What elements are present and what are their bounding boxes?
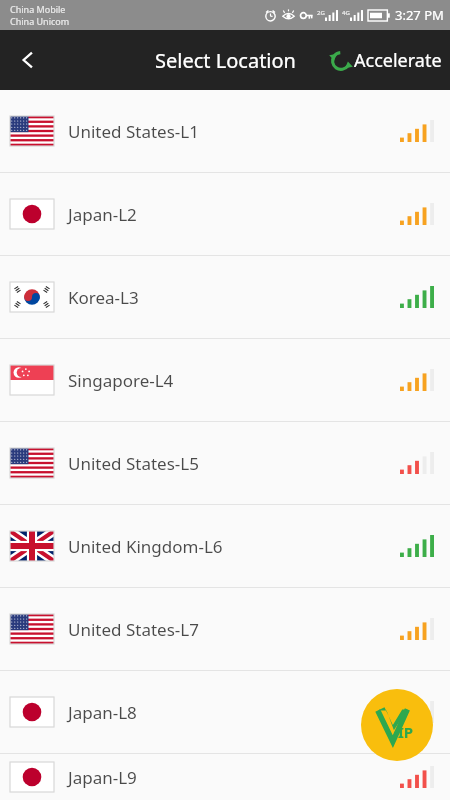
button[interactable]: Accelerate: [325, 42, 446, 79]
staticText: Select Location: [155, 47, 296, 74]
button[interactable]: VIP: [361, 689, 433, 761]
staticText: 3:27 PM: [395, 6, 444, 24]
button[interactable]: United States-L5: [0, 422, 450, 504]
staticText: 4G: [342, 9, 350, 17]
staticText: Singapore-L4: [68, 369, 174, 392]
staticText: China Mobile: [10, 3, 66, 15]
button[interactable]: United States-L7: [0, 588, 450, 670]
staticText: Japan-L2: [68, 203, 137, 226]
staticText: Accelerate: [354, 48, 442, 73]
button[interactable]: United States-L1: [0, 90, 450, 172]
button[interactable]: Korea-L3: [0, 256, 450, 338]
staticText: 2G: [317, 9, 325, 17]
button[interactable]: Japan-L9: [0, 754, 450, 800]
button[interactable]: Japan-L2: [0, 173, 450, 255]
staticText: IP: [398, 722, 414, 742]
staticText: United States-L5: [68, 452, 199, 475]
staticText: United Kingdom-L6: [68, 535, 223, 558]
staticText: China Unicom: [10, 15, 70, 27]
button[interactable]: Back: [0, 32, 56, 88]
button[interactable]: Singapore-L4: [0, 339, 450, 421]
staticText: Japan-L9: [68, 766, 137, 789]
staticText: Japan-L8: [68, 701, 137, 724]
button[interactable]: Japan-L8: [0, 671, 450, 753]
staticText: Korea-L3: [68, 286, 139, 309]
staticText: United States-L1: [68, 120, 199, 143]
button[interactable]: United Kingdom-L6: [0, 505, 450, 587]
staticText: United States-L7: [68, 618, 199, 641]
